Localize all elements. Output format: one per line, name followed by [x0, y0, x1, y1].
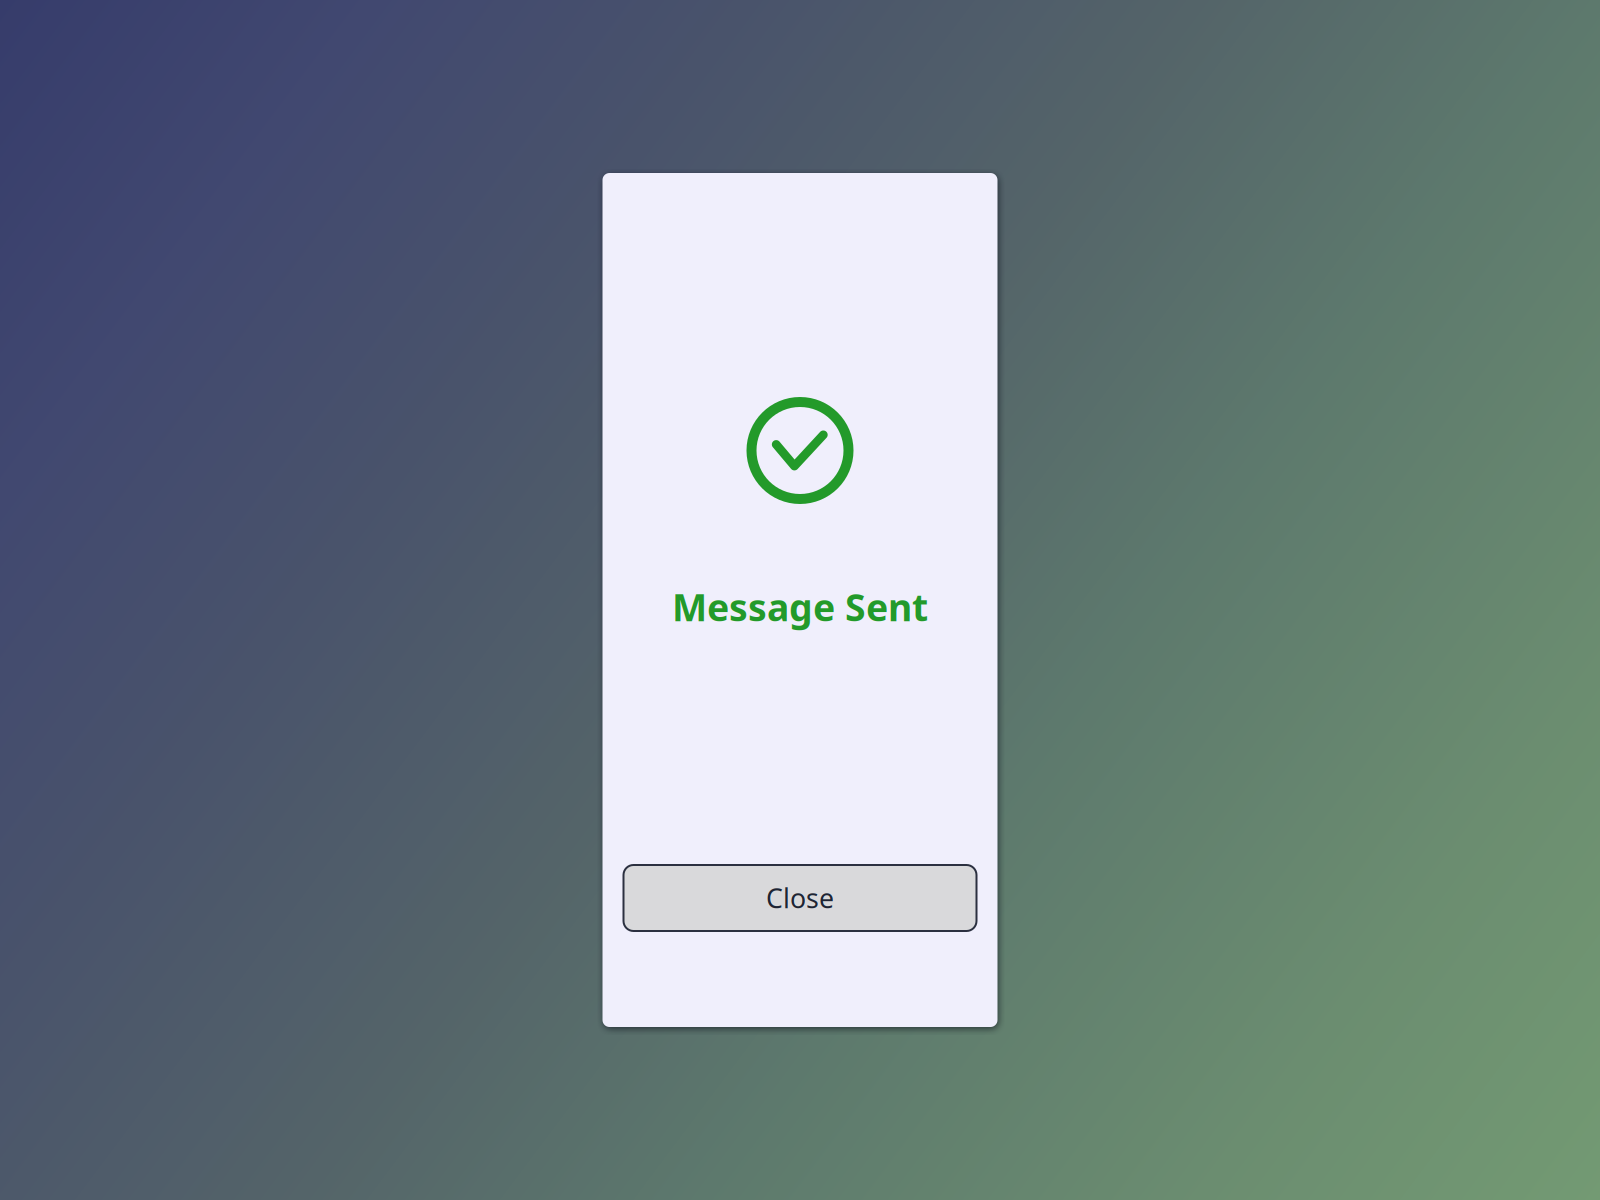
staticText: Close: [766, 880, 834, 916]
staticText: Message Sent: [672, 582, 928, 632]
button[interactable]: Close: [623, 865, 976, 931]
